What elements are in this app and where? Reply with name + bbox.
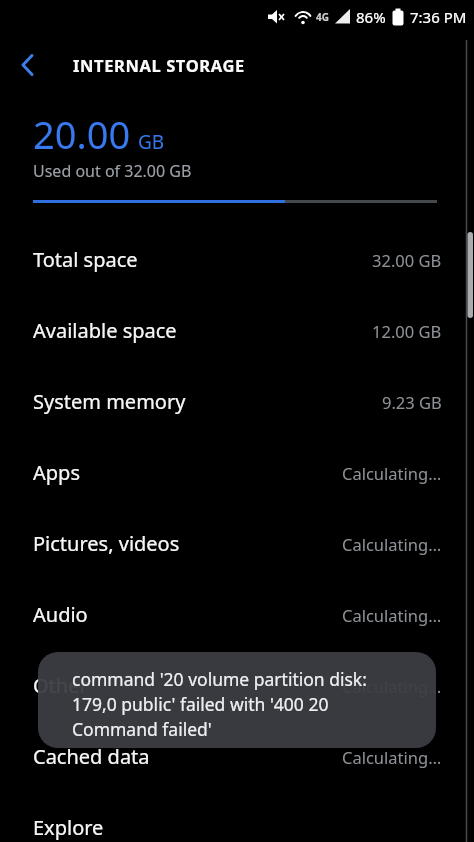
staticText: 32.00 GB	[372, 249, 442, 271]
staticText: Pictures, videos	[33, 530, 180, 557]
staticText: Calculating…	[342, 462, 442, 484]
button[interactable]: Available space	[0, 295, 474, 366]
staticText: Other	[33, 672, 88, 699]
button[interactable]: Apps	[0, 437, 474, 508]
staticText: System memory	[33, 388, 186, 415]
staticText: Used out of 32.00 GB	[33, 160, 192, 182]
staticText: Apps	[33, 459, 80, 486]
button[interactable]	[0, 37, 56, 93]
staticText: 12.00 GB	[372, 320, 442, 342]
staticText: command '20 volume partition disk: 179,0…	[72, 667, 367, 741]
staticText: INTERNAL STORAGE	[73, 54, 245, 76]
staticText: 9.23 GB	[382, 391, 442, 413]
staticText: Total space	[33, 246, 138, 273]
staticText: 86%	[356, 7, 386, 27]
staticText: Explore	[33, 814, 104, 841]
staticText: Calculating…	[342, 533, 442, 555]
button[interactable]: Explore	[0, 802, 474, 842]
staticText: Available space	[33, 317, 177, 344]
staticText: Calculating…	[342, 604, 442, 626]
staticText: 4G	[316, 10, 329, 24]
staticText: Calculating…	[342, 746, 442, 768]
button[interactable]: Audio	[0, 579, 474, 650]
staticText: 7:36 PM	[410, 7, 467, 27]
button[interactable]: Other	[0, 650, 474, 721]
staticText: 20.00	[33, 108, 131, 160]
staticText: Calculating…	[342, 675, 442, 697]
button[interactable]: Pictures, videos	[0, 508, 474, 579]
staticText: GB	[138, 129, 165, 155]
staticText: Cached data	[33, 743, 150, 770]
button[interactable]: Cached data	[0, 721, 474, 792]
button[interactable]: Total space	[0, 224, 474, 295]
staticText: Audio	[33, 601, 88, 628]
button[interactable]: System memory	[0, 366, 474, 437]
